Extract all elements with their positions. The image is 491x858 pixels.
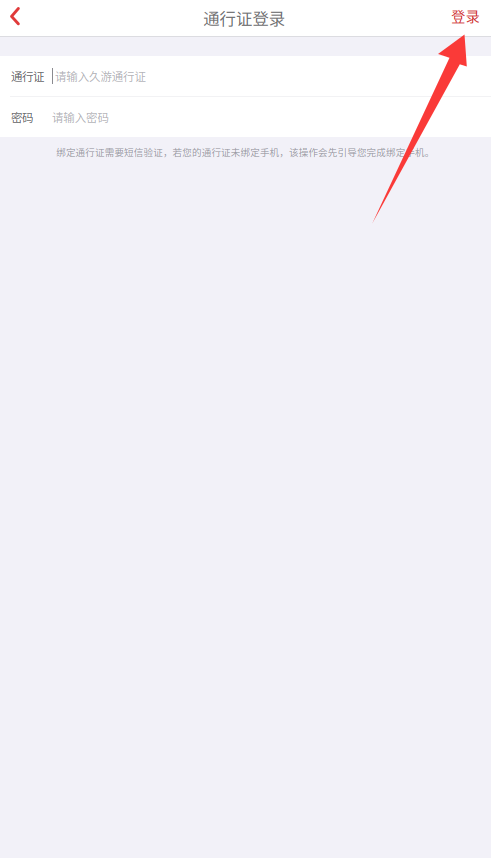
button[interactable]: 密码 [0,97,491,137]
staticText: 绑定通行证需要短信验证，若您的通行证未绑定手机，该操作会先引导您完成绑定手机。 [56,145,435,159]
button[interactable]: Back [0,0,32,36]
staticText: 密码 [11,109,33,125]
staticText: 通行证登录 [203,6,285,29]
staticText: 请输入密码 [52,109,108,125]
staticText: 通行证 [11,68,44,84]
button[interactable]: 登录 [440,0,491,36]
staticText: 登录 [451,5,480,26]
staticText: 请输入久游通行证 [55,68,145,84]
button[interactable]: 通行证 [0,56,491,96]
